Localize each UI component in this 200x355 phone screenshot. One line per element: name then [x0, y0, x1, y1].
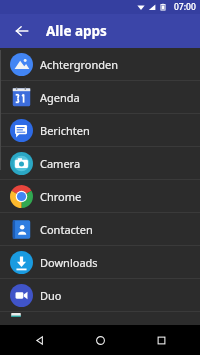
- button[interactable]: Agenda: [0, 81, 200, 113]
- staticText: Contacten: [40, 222, 93, 237]
- staticText: Alle apps: [46, 22, 107, 40]
- button[interactable]: Achtergronden: [0, 48, 200, 80]
- staticText: 07:00: [174, 1, 196, 13]
- button[interactable]: Back: [9, 18, 35, 44]
- button[interactable]: Berichten: [0, 114, 200, 146]
- staticText: Agenda: [40, 90, 80, 105]
- button[interactable]: [0, 312, 200, 324]
- button[interactable]: Camera: [0, 147, 200, 179]
- button[interactable]: Home: [78, 325, 122, 355]
- button[interactable]: Downloads: [0, 246, 200, 278]
- staticText: Downloads: [40, 255, 98, 270]
- button[interactable]: Chrome: [0, 180, 200, 212]
- button[interactable]: Duo: [0, 279, 200, 311]
- staticText: Chrome: [40, 189, 82, 204]
- staticText: Berichten: [40, 123, 90, 138]
- button[interactable]: Contacten: [0, 213, 200, 245]
- button[interactable]: Recents: [139, 325, 183, 355]
- button[interactable]: Back: [17, 325, 61, 355]
- staticText: Duo: [40, 288, 62, 303]
- staticText: Camera: [40, 156, 81, 171]
- staticText: Achtergronden: [40, 57, 119, 72]
